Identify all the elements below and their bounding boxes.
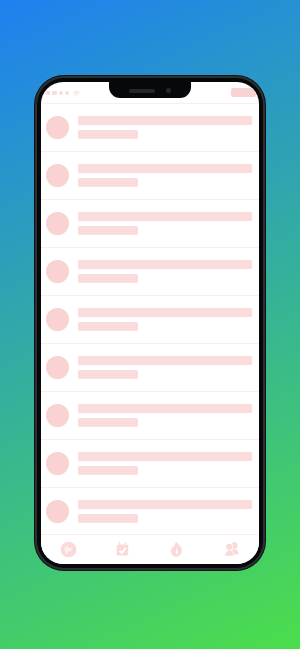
button[interactable]	[41, 248, 259, 295]
button[interactable]: Trending	[149, 535, 204, 564]
button[interactable]	[41, 344, 259, 391]
button[interactable]	[41, 488, 259, 534]
button[interactable]	[41, 440, 259, 487]
button[interactable]	[41, 152, 259, 199]
button[interactable]	[41, 104, 259, 151]
button[interactable]	[41, 200, 259, 247]
button[interactable]: Friends	[204, 535, 259, 564]
button[interactable]: Tasks	[95, 535, 149, 564]
button[interactable]	[41, 296, 259, 343]
button[interactable]	[41, 392, 259, 439]
button[interactable]: Discover	[41, 535, 95, 564]
